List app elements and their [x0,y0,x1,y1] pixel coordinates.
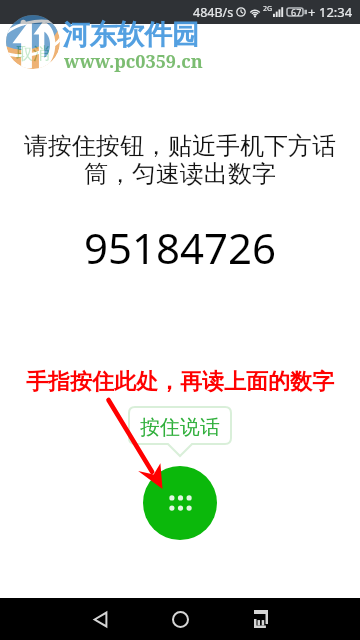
staticText: 12:34 [319,3,353,21]
staticText: 请按住按钮，贴近手机下方话筒，匀速读出数字 [18,131,342,189]
staticText: www.pc0359.cn [64,49,203,74]
staticText: 河东软件园 [62,18,200,53]
button[interactable]: Back [70,598,130,640]
staticText: 取消 [16,43,50,64]
staticText: 2G [263,4,273,14]
button[interactable]: 按住说话 [129,407,231,457]
staticText: 67 [291,6,302,18]
staticText: 95184726 [0,219,360,276]
button[interactable]: 按住说话 [143,466,217,540]
staticText: + [308,3,316,21]
button[interactable]: 取消 [8,37,58,70]
staticText: 484B/s [193,4,234,21]
staticText: 按住说话 [140,415,220,440]
staticText: 手指按住此处，再读上面的数字 [0,368,360,396]
button[interactable]: Screenshot [231,598,291,640]
button[interactable]: Home [150,598,210,640]
